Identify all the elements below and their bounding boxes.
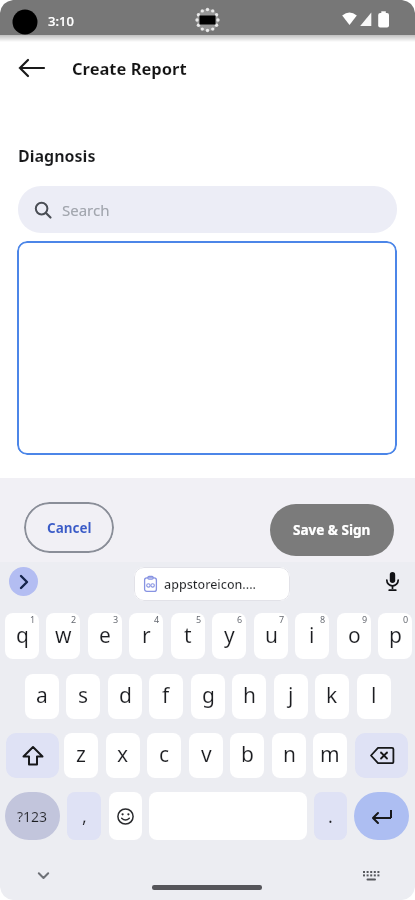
button[interactable] [355,733,408,778]
button[interactable] [9,567,38,596]
staticText: y [224,621,235,650]
button[interactable]: a [25,674,59,719]
button[interactable]: v [189,733,223,778]
staticText: n [283,740,296,769]
staticText: 8 [320,613,326,625]
button[interactable]: x [106,733,140,778]
button[interactable]: g [191,674,225,719]
staticText: 2 [71,613,77,625]
staticText: 9 [362,613,368,625]
staticText: 3 [113,613,119,625]
staticText: 5 [196,613,202,625]
staticText: Search [62,200,110,220]
button[interactable]: n [272,733,306,778]
staticText: 4 [154,613,160,625]
staticText: v [201,740,212,769]
button[interactable] [109,792,142,840]
staticText: z [76,740,86,769]
staticText: , [82,804,87,829]
staticText: ?123 [17,807,48,826]
staticText: Create Report [72,57,187,79]
staticText: m [320,740,340,769]
button[interactable] [152,885,262,890]
button[interactable]: . [314,792,347,840]
staticText: b [241,740,254,769]
staticText: 7 [279,613,285,625]
button[interactable]: h [232,674,266,719]
staticText: 0 [403,613,409,625]
button[interactable] [6,733,59,778]
button[interactable]: r [129,613,163,659]
button[interactable]: w [46,613,80,659]
staticText: r [142,621,151,650]
button[interactable]: z [64,733,98,778]
staticText: 6 [237,613,243,625]
button[interactable]: c [147,733,181,778]
button[interactable]: t [171,613,205,659]
button[interactable]: f [149,674,183,719]
staticText: g [202,681,215,710]
staticText: 1 [30,613,36,625]
button[interactable]: Save & Sign [270,504,394,556]
staticText: x [117,740,129,769]
staticText: f [162,681,170,710]
button[interactable]: k [315,674,349,719]
button[interactable]: p [378,613,412,659]
button[interactable]: ?123 [5,792,60,840]
button[interactable]: e [88,613,122,659]
staticText: h [243,681,256,710]
button[interactable] [17,241,397,455]
staticText: c [159,740,170,769]
button[interactable]: b [230,733,264,778]
staticText: s [78,681,89,710]
staticText: . [328,804,333,829]
button[interactable]: m [313,733,347,778]
staticText: e [99,621,111,650]
button[interactable]: j [274,674,308,719]
staticText: Save & Sign [293,521,371,539]
button[interactable]: o [337,613,371,659]
staticText: o [348,621,361,650]
button[interactable]: d [108,674,142,719]
button[interactable]: s [66,674,100,719]
staticText: i [309,621,315,650]
button[interactable]: appstoreicon.... [134,567,290,601]
staticText: appstoreicon.... [164,576,256,593]
button[interactable]: , [67,792,101,840]
button[interactable]: Search [18,186,397,233]
staticText: q [16,621,29,650]
staticText: k [326,681,338,710]
staticText: u [265,621,278,650]
button[interactable] [380,570,405,595]
button[interactable] [354,792,409,840]
button[interactable]: q [5,613,39,659]
staticText: l [371,681,377,710]
staticText: Cancel [47,519,92,537]
staticText: Diagnosis [18,145,96,167]
button[interactable] [10,52,54,84]
staticText: t [184,621,192,650]
staticText: 3:10 [48,12,74,30]
button[interactable]: l [357,674,391,719]
staticText: p [389,621,402,650]
button[interactable]: u [254,613,288,659]
button[interactable]: i [295,613,329,659]
staticText: w [55,621,72,650]
staticText: d [119,681,132,710]
staticText: j [288,681,294,710]
staticText: a [36,681,48,710]
button[interactable]: y [212,613,246,659]
button[interactable]: Cancel [24,502,114,553]
